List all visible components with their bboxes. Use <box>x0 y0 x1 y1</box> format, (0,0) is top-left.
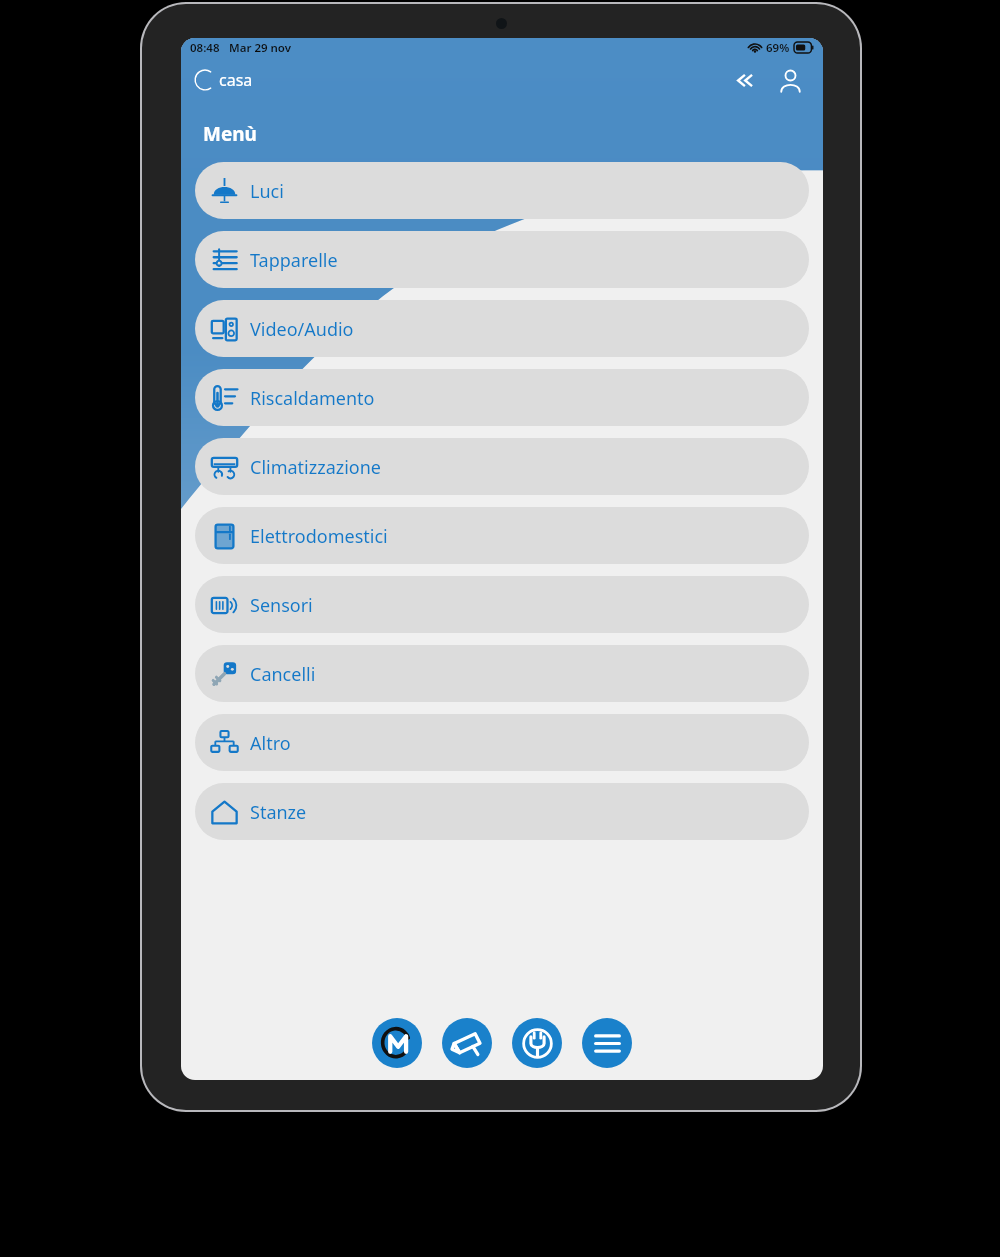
button[interactable]: Sensori <box>195 576 809 633</box>
button[interactable]: Elettrodomestici <box>195 507 809 564</box>
staticText: Altro <box>250 731 291 756</box>
staticText: casa <box>219 69 253 91</box>
button[interactable]: casa <box>192 67 253 93</box>
staticText: Video/Audio <box>250 317 354 342</box>
staticText: Sensori <box>250 593 313 618</box>
button[interactable]: Profilo utente <box>773 63 807 97</box>
button[interactable]: Tapparelle <box>195 231 809 288</box>
button[interactable]: Riscaldamento <box>195 369 809 426</box>
button[interactable]: Monitor <box>372 1018 422 1068</box>
button[interactable]: Menu <box>582 1018 632 1068</box>
staticText: Menù <box>203 121 257 147</box>
staticText: Luci <box>250 179 284 204</box>
button[interactable]: Prese <box>512 1018 562 1068</box>
button[interactable]: Telecamere <box>442 1018 492 1068</box>
staticText: 69% <box>766 40 790 56</box>
button[interactable]: Indietro <box>729 63 763 97</box>
staticText: Riscaldamento <box>250 386 375 411</box>
button[interactable]: Luci <box>195 162 809 219</box>
button[interactable]: Cancelli <box>195 645 809 702</box>
button[interactable]: Stanze <box>195 783 809 840</box>
button[interactable]: Altro <box>195 714 809 771</box>
staticText: Elettrodomestici <box>250 524 388 549</box>
staticText: Mar 29 nov <box>229 40 292 56</box>
staticText: Stanze <box>250 800 307 825</box>
button[interactable]: Climatizzazione <box>195 438 809 495</box>
staticText: Climatizzazione <box>250 455 382 480</box>
staticText: Cancelli <box>250 662 316 687</box>
staticText: Tapparelle <box>250 248 338 273</box>
button[interactable]: Video/Audio <box>195 300 809 357</box>
staticText: 08:48 <box>190 40 220 56</box>
